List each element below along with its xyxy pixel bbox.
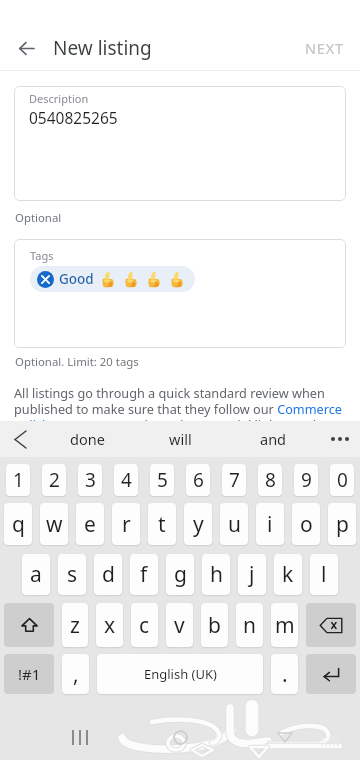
button[interactable]: . bbox=[271, 654, 298, 694]
button[interactable]: s bbox=[58, 554, 86, 595]
staticText: . bbox=[282, 660, 288, 689]
button[interactable]: p bbox=[328, 503, 356, 545]
button[interactable]: b bbox=[201, 603, 228, 647]
button[interactable]: y bbox=[184, 503, 212, 545]
button[interactable]: f bbox=[130, 554, 158, 595]
button[interactable]: 3 bbox=[78, 464, 102, 496]
staticText: u bbox=[228, 510, 241, 539]
staticText: NEXT bbox=[305, 38, 344, 58]
staticText: r bbox=[122, 510, 131, 539]
button[interactable]: Previous suggestions bbox=[0, 421, 41, 457]
staticText: Tags bbox=[30, 248, 54, 263]
staticText: p bbox=[336, 510, 349, 539]
staticText: s bbox=[67, 560, 78, 589]
button[interactable]: j bbox=[238, 554, 266, 595]
staticText: j bbox=[249, 560, 255, 589]
button[interactable]: 7 bbox=[222, 464, 246, 496]
staticText: and bbox=[260, 429, 287, 449]
staticText: b bbox=[208, 611, 221, 640]
staticText: k bbox=[282, 560, 294, 589]
staticText: will bbox=[169, 429, 192, 449]
staticText: i bbox=[267, 510, 273, 539]
staticText: 1 bbox=[13, 467, 24, 493]
staticText: done bbox=[70, 429, 105, 449]
button[interactable]: l bbox=[310, 554, 338, 595]
button[interactable]: q bbox=[4, 503, 32, 545]
button[interactable]: 5 bbox=[150, 464, 174, 496]
button[interactable]: 0 bbox=[330, 464, 354, 496]
button[interactable]: r bbox=[112, 503, 140, 545]
staticText: v bbox=[174, 611, 185, 640]
button[interactable]: 9 bbox=[294, 464, 318, 496]
button[interactable]: Tags bbox=[14, 239, 346, 348]
staticText: z bbox=[70, 611, 80, 640]
button[interactable]: 1 bbox=[6, 464, 30, 496]
staticText: l bbox=[321, 560, 327, 589]
staticText: t bbox=[158, 510, 166, 539]
button[interactable]: Back bbox=[0, 26, 53, 70]
button[interactable]: and bbox=[227, 421, 320, 457]
button[interactable]: , bbox=[62, 654, 89, 694]
staticText: 3 bbox=[85, 467, 96, 493]
staticText: 7 bbox=[229, 467, 240, 493]
button[interactable]: Symbols bbox=[4, 654, 54, 694]
staticText: o bbox=[300, 510, 313, 539]
staticText: g bbox=[174, 560, 187, 589]
button[interactable]: n bbox=[236, 603, 263, 647]
button[interactable]: Shift bbox=[4, 603, 54, 647]
staticText: d bbox=[102, 560, 115, 589]
button[interactable]: w bbox=[40, 503, 68, 545]
button[interactable]: t bbox=[148, 503, 176, 545]
button[interactable]: a bbox=[22, 554, 50, 595]
staticText: 0540825265 bbox=[29, 107, 118, 128]
button[interactable]: English (UK) bbox=[97, 654, 263, 694]
button[interactable]: x bbox=[96, 603, 123, 647]
button[interactable]: h bbox=[202, 554, 230, 595]
button[interactable]: g bbox=[166, 554, 194, 595]
button[interactable]: More options bbox=[320, 421, 360, 457]
button[interactable]: Back bbox=[261, 715, 309, 760]
button[interactable]: v bbox=[166, 603, 193, 647]
button[interactable]: Recents bbox=[56, 715, 104, 760]
staticText: 6 bbox=[193, 467, 204, 493]
staticText: 2 bbox=[49, 467, 60, 493]
button[interactable]: will bbox=[134, 421, 227, 457]
staticText: h bbox=[210, 560, 223, 589]
staticText: All listings go through a quick standard… bbox=[14, 384, 346, 421]
button[interactable]: o bbox=[292, 503, 320, 545]
button[interactable]: Home bbox=[156, 715, 204, 760]
button[interactable]: 8 bbox=[258, 464, 282, 496]
button[interactable]: m bbox=[271, 603, 298, 647]
staticText: 4 bbox=[121, 467, 132, 493]
staticText: x bbox=[104, 611, 116, 640]
staticText: w bbox=[46, 510, 63, 539]
staticText: e bbox=[84, 510, 96, 539]
staticText: Optional. Limit: 20 tags bbox=[15, 354, 139, 370]
staticText: Good bbox=[59, 270, 94, 288]
button[interactable]: k bbox=[274, 554, 302, 595]
staticText: 5 bbox=[157, 467, 168, 493]
button[interactable]: d bbox=[94, 554, 122, 595]
button[interactable]: Backspace bbox=[306, 603, 356, 647]
staticText: New listing bbox=[53, 35, 152, 61]
button[interactable]: done bbox=[41, 421, 134, 457]
button[interactable]: c bbox=[131, 603, 158, 647]
button[interactable]: 2 bbox=[42, 464, 66, 496]
staticText: , bbox=[73, 660, 79, 689]
staticText: f bbox=[140, 560, 148, 589]
staticText: English (UK) bbox=[144, 665, 217, 683]
button[interactable]: NEXT bbox=[289, 26, 360, 70]
button[interactable]: e bbox=[76, 503, 104, 545]
staticText: m bbox=[275, 611, 295, 640]
staticText: n bbox=[243, 611, 256, 640]
button[interactable]: i bbox=[256, 503, 284, 545]
staticText: Description bbox=[29, 91, 89, 106]
staticText: !#1 bbox=[18, 664, 41, 684]
button[interactable]: 6 bbox=[186, 464, 210, 496]
button[interactable]: Enter bbox=[306, 654, 356, 694]
button[interactable]: u bbox=[220, 503, 248, 545]
button[interactable]: Good bbox=[30, 266, 195, 292]
button[interactable]: z bbox=[62, 603, 88, 647]
button[interactable]: Description bbox=[14, 86, 346, 201]
button[interactable]: 4 bbox=[114, 464, 138, 496]
